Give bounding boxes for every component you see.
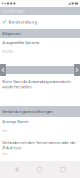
staticText: Bereitstellung bbox=[9, 19, 37, 25]
button[interactable]: Zurück bbox=[0, 64, 6, 76]
button[interactable]: Übersicht bbox=[57, 163, 69, 176]
staticText: Anzeige Name bbox=[2, 119, 28, 124]
staticText: Wert bbox=[2, 152, 8, 155]
button[interactable]: Startseite bbox=[33, 163, 46, 176]
staticText: Allgemein bbox=[2, 31, 21, 36]
staticText: Wert bbox=[2, 129, 8, 132]
staticText: Ausgewählte Sprache bbox=[2, 40, 39, 45]
staticText: Verbindungseinstellungen bbox=[2, 109, 53, 114]
staticText: Deutsch bbox=[2, 50, 13, 53]
staticText: Verbinden mit dem Servernamen oder der I… bbox=[2, 140, 76, 150]
button[interactable]: Zurück bbox=[11, 163, 22, 176]
staticText: Beim Start die Anwendung automatisch wie… bbox=[2, 79, 70, 89]
button[interactable]: Weiter bbox=[74, 64, 80, 76]
staticText: Einstellungen bbox=[2, 8, 24, 14]
